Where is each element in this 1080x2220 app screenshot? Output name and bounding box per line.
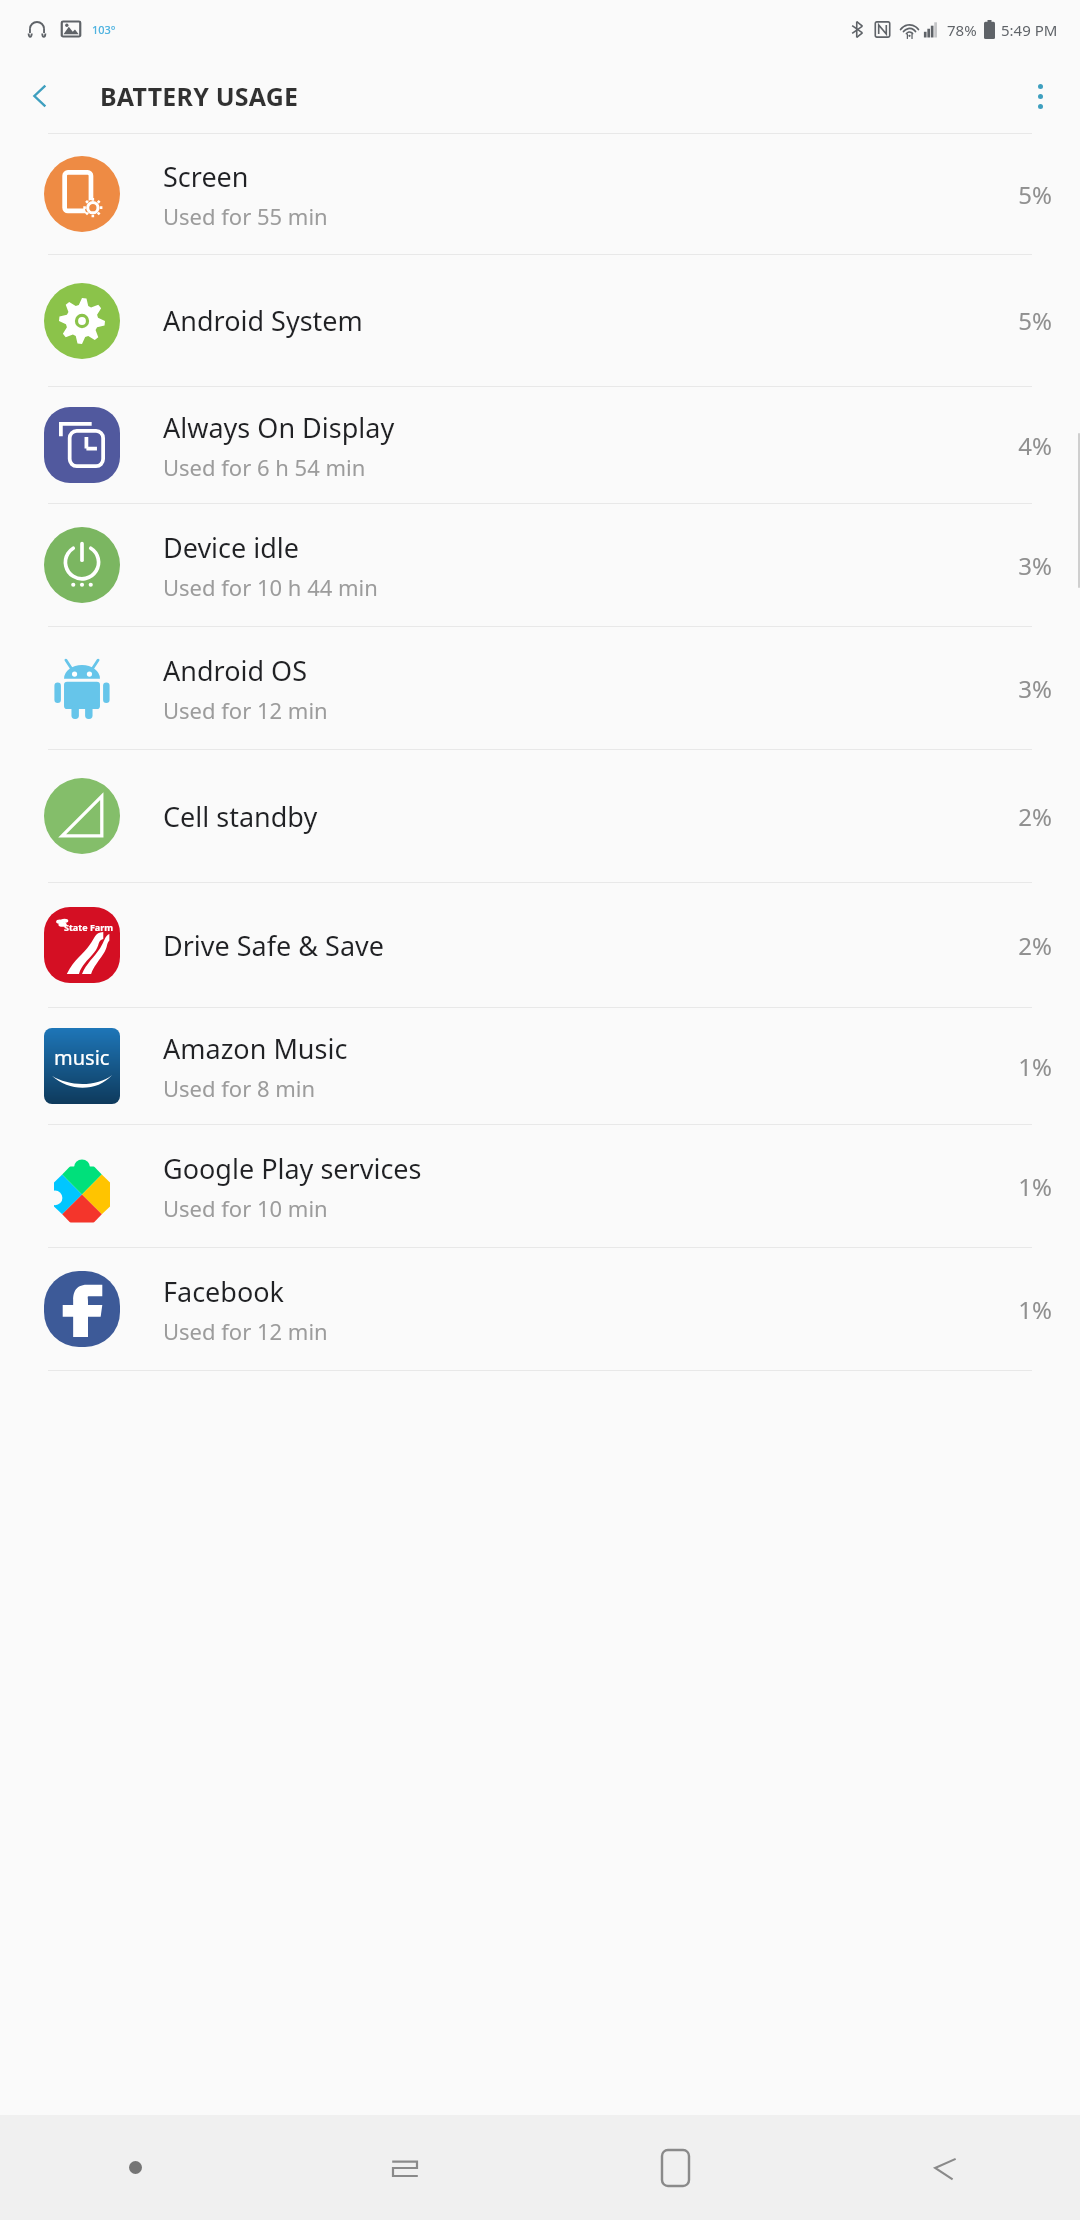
button[interactable]: Device idle	[0, 504, 1080, 626]
button[interactable]: Back	[810, 2115, 1080, 2220]
staticText: Android OS	[163, 652, 307, 689]
staticText: Google Play services	[163, 1150, 422, 1187]
staticText: 3%	[1018, 672, 1052, 705]
staticText: Device idle	[163, 529, 300, 566]
staticText: 78%	[947, 20, 977, 40]
staticText: Always On Display	[163, 409, 395, 446]
staticText: 103º	[92, 22, 116, 37]
button[interactable]: Android System	[0, 255, 1080, 386]
button[interactable]: Back	[10, 66, 70, 126]
staticText: BATTERY USAGE	[100, 79, 299, 113]
staticText: Used for 6 h 54 min	[163, 452, 366, 482]
staticText: Used for 8 min	[163, 1073, 316, 1103]
staticText: 5%	[1018, 178, 1052, 211]
staticText: Facebook	[163, 1273, 285, 1310]
staticText: Used for 55 min	[163, 201, 328, 231]
staticText: 1%	[1018, 1293, 1052, 1326]
button[interactable]: More options	[1010, 66, 1070, 126]
staticText: Cell standby	[163, 798, 318, 835]
staticText: Android System	[163, 302, 363, 339]
staticText: 2%	[1018, 929, 1052, 962]
staticText: 5%	[1018, 304, 1052, 337]
staticText: Used for 12 min	[163, 1316, 328, 1346]
button[interactable]: Android OS	[0, 627, 1080, 749]
staticText: Used for 10 min	[163, 1193, 328, 1223]
staticText: Amazon Music	[163, 1030, 348, 1067]
staticText: 1%	[1018, 1050, 1052, 1083]
staticText: State Farm	[64, 921, 114, 933]
button[interactable]: Screen	[0, 134, 1080, 254]
button[interactable]: music	[0, 1008, 1080, 1124]
button[interactable]: Menu	[0, 2115, 270, 2220]
staticText: Used for 10 h 44 min	[163, 572, 378, 602]
staticText: Used for 12 min	[163, 695, 328, 725]
staticText: 4%	[1018, 429, 1052, 462]
button[interactable]: State Farm	[0, 883, 1080, 1007]
button[interactable]: Cell standby	[0, 750, 1080, 882]
staticText: 3%	[1018, 549, 1052, 582]
staticText: 1%	[1018, 1170, 1052, 1203]
staticText: Drive Safe & Save	[163, 927, 384, 964]
button[interactable]: Facebook	[0, 1248, 1080, 1370]
staticText: 2%	[1018, 800, 1052, 833]
staticText: Screen	[163, 158, 249, 195]
button[interactable]: Home	[540, 2115, 810, 2220]
button[interactable]: Google Play services	[0, 1125, 1080, 1247]
button[interactable]: Always On Display	[0, 387, 1080, 503]
button[interactable]: Recents	[270, 2115, 540, 2220]
staticText: music	[54, 1044, 110, 1071]
staticText: 5:49 PM	[1001, 20, 1058, 40]
